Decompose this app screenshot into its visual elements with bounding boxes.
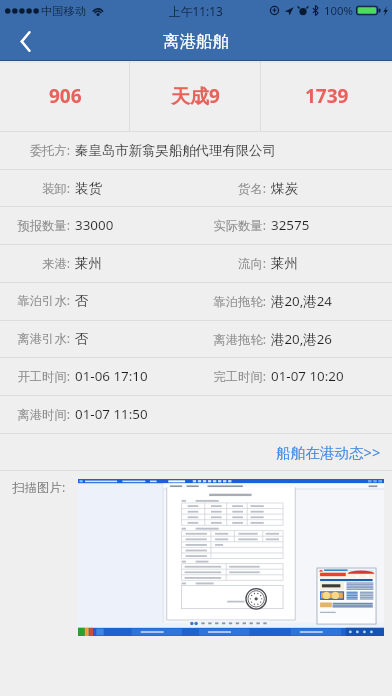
staticText: 中国移动 [41, 4, 87, 18]
staticText: 天成9 [171, 83, 220, 109]
button[interactable]: Scanned document image [78, 479, 384, 636]
staticText: 委托方: [0, 142, 70, 159]
staticText: 上午11:13 [169, 3, 223, 19]
staticText: 否 [75, 292, 89, 309]
staticText: 来港: [0, 255, 70, 272]
staticText: 流向: [196, 255, 266, 272]
staticText: 906 [49, 83, 82, 109]
staticText: 离港时间: [0, 406, 70, 423]
staticText: 离港船舶 [163, 31, 229, 52]
staticText: 否 [75, 330, 89, 347]
staticText: 莱州 [75, 255, 102, 272]
staticText: 01-06 17:10 [75, 367, 148, 385]
button[interactable]: Back [0, 21, 46, 61]
staticText: 秦皇岛市新翕昊船舶代理有限公司 [75, 142, 276, 159]
staticText: 港20,港24 [271, 292, 333, 310]
staticText: 离港引水: [0, 330, 70, 347]
button[interactable]: 906 [0, 61, 130, 131]
staticText: 实际数量: [196, 217, 266, 234]
staticText: 01-07 11:50 [75, 405, 148, 423]
staticText: 100% [324, 3, 353, 18]
button[interactable]: 1739 [261, 61, 392, 131]
staticText: 装卸: [0, 180, 70, 197]
staticText: 32575 [271, 216, 310, 234]
staticText: 莱州 [271, 255, 298, 272]
button[interactable]: 船舶在港动态>> [0, 433, 392, 471]
staticText: 煤炭 [271, 180, 298, 197]
staticText: 1739 [305, 83, 349, 109]
staticText: 港20,港26 [271, 330, 333, 348]
staticText: 开工时间: [0, 368, 70, 385]
button[interactable]: 天成9 [130, 61, 261, 131]
staticText: 预报数量: [0, 217, 70, 234]
staticText: 靠泊拖轮: [196, 293, 266, 310]
staticText: 靠泊引水: [0, 292, 70, 309]
staticText: 货名: [196, 180, 266, 197]
staticText: 装货 [75, 180, 102, 197]
staticText: 离港拖轮: [196, 331, 266, 348]
staticText: 完工时间: [196, 368, 266, 385]
staticText: 扫描图片: [12, 479, 66, 496]
staticText: 船舶在港动态>> [276, 442, 381, 462]
staticText: 33000 [75, 216, 114, 234]
staticText: 01-07 10:20 [271, 367, 344, 385]
